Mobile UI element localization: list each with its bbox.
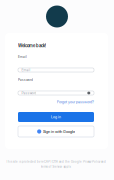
staticText: Log in — [51, 115, 61, 119]
button[interactable]: Forgot your password? — [18, 99, 94, 104]
staticText: Welcome back! — [18, 43, 46, 48]
staticText: Password — [21, 91, 36, 95]
staticText: Sign in with Google — [43, 129, 75, 134]
staticText: Email — [21, 68, 30, 72]
staticText: Forgot your password? — [57, 100, 94, 104]
staticText: Email — [18, 55, 27, 59]
staticText: Terms of Service apply. — [40, 165, 71, 168]
staticText: This site is protected by reCAPTCHA and … — [6, 160, 106, 163]
staticText: Password — [18, 78, 33, 82]
button[interactable]: Sign in with Google — [18, 126, 94, 137]
button[interactable]: Log in — [18, 112, 94, 122]
